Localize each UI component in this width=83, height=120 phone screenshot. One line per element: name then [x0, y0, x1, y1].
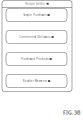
button[interactable]: Continental Delicacies	[6, 30, 67, 43]
button[interactable]: Recipe Folder	[2, 0, 72, 7]
button[interactable]: Retailer Moments	[6, 74, 67, 87]
staticText: FIG. 3B	[63, 109, 80, 116]
staticText: Retailer Moments	[23, 79, 47, 83]
staticText: Purchased Products	[21, 57, 48, 61]
staticText: Continental Delicacies	[19, 35, 50, 39]
button[interactable]: Purchased Products	[6, 52, 67, 65]
staticText: Recipe Folder	[25, 2, 45, 5]
button[interactable]: Simple Purchases	[6, 8, 67, 21]
staticText: Simple Purchases	[23, 13, 46, 17]
